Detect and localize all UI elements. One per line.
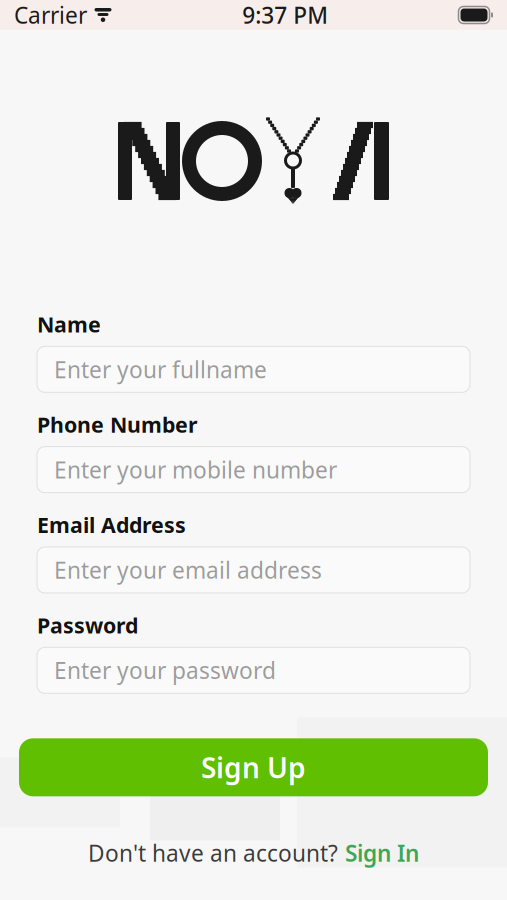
staticText: Don't have an account? — [88, 838, 338, 868]
staticText: 9:37 PM — [242, 0, 328, 30]
staticText: Sign In — [345, 838, 419, 868]
staticText: Name — [37, 310, 101, 338]
staticText: Email Address — [37, 511, 186, 539]
staticText: Enter your fullname — [54, 354, 267, 384]
button[interactable]: Sign Up — [19, 738, 488, 796]
staticText: Carrier — [14, 0, 87, 30]
button[interactable]: Enter your email address — [37, 547, 470, 593]
staticText: Enter your mobile number — [54, 455, 337, 485]
button[interactable]: Enter your fullname — [37, 346, 470, 392]
button[interactable]: Don't have an account? — [68, 830, 439, 876]
staticText: Enter your password — [54, 655, 276, 685]
button[interactable]: Enter your password — [37, 647, 470, 693]
staticText: Sign Up — [201, 749, 306, 786]
staticText: Enter your email address — [54, 555, 322, 585]
staticText: Password — [37, 611, 138, 639]
button[interactable]: Enter your mobile number — [37, 447, 470, 493]
staticText: Phone Number — [37, 410, 198, 439]
